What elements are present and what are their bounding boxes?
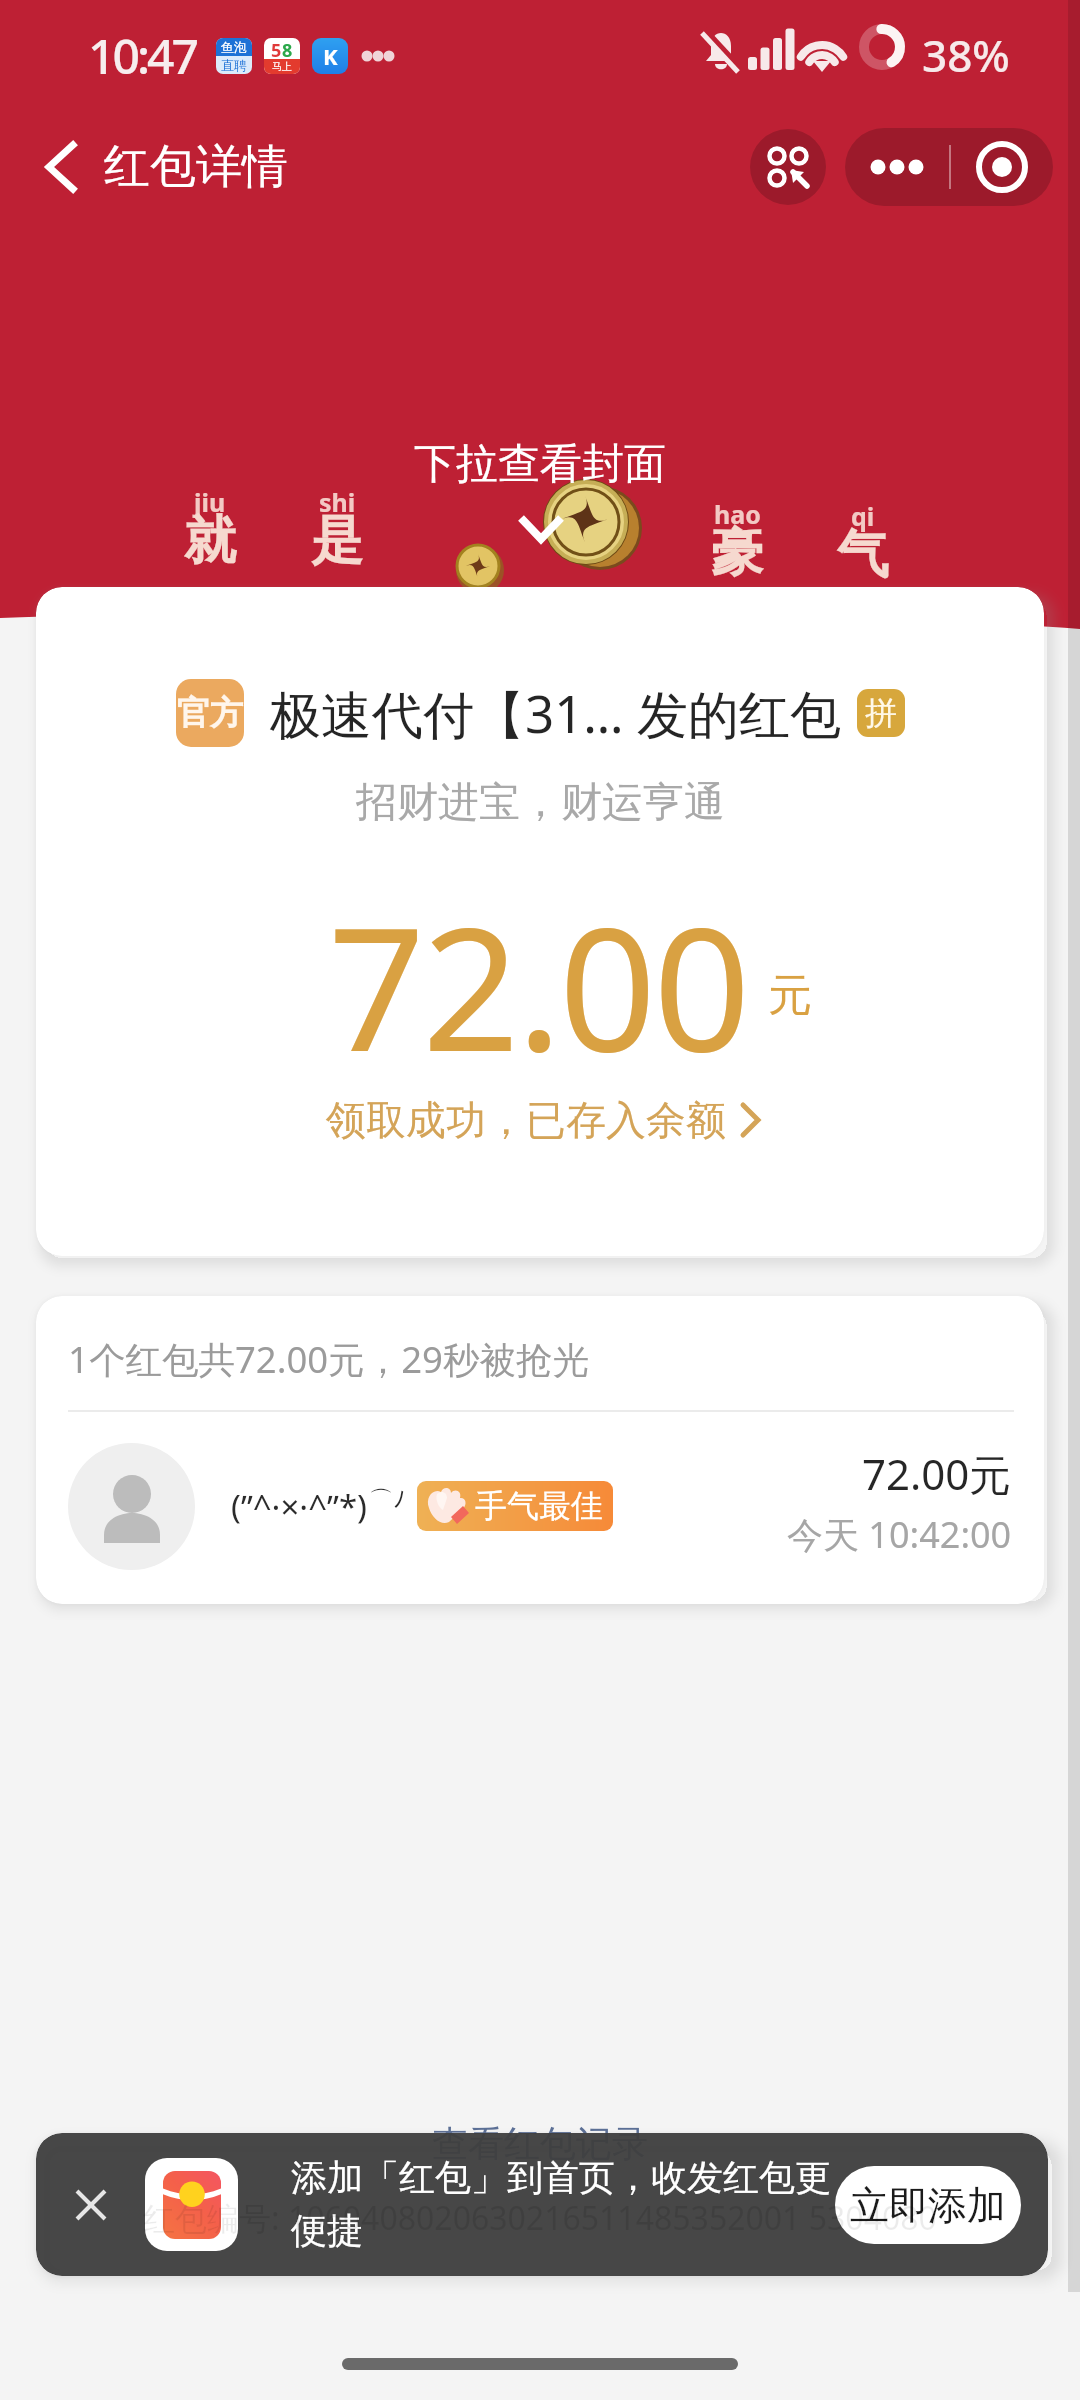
staticText: 72.00元 (862, 1445, 1012, 1502)
button[interactable]: Mini program (750, 129, 826, 205)
staticText: 添加「红包」到首页，收发红包更便捷 (291, 2155, 849, 2254)
staticText: 72.00 (328, 869, 748, 1059)
staticText: 8 (282, 38, 293, 59)
other: Silent (700, 28, 742, 76)
staticText: K (323, 41, 338, 71)
button[interactable]: 查看红包记录 (412, 2117, 668, 2170)
button[interactable]: Back (6, 112, 116, 222)
staticText: 豪 (711, 520, 763, 586)
staticText: 气 (837, 522, 889, 588)
staticText: 元 (768, 968, 812, 1023)
staticText: 红包编号: 1060408020630216511485352001 53040… (143, 2196, 937, 2240)
staticText: 下拉查看封面 (414, 438, 666, 491)
staticText: 鱼泡 (221, 39, 247, 55)
staticText: 直聘 (221, 57, 247, 73)
staticText: 招财进宝，财运亨通 (356, 777, 725, 829)
staticText: 手气最佳 (475, 1486, 603, 1526)
button[interactable]: 立即添加 (835, 2166, 1021, 2244)
button[interactable]: More (845, 128, 949, 206)
staticText: jiu (194, 485, 226, 519)
button[interactable]: Close mini program (951, 128, 1053, 206)
staticText: 官方 (177, 692, 243, 734)
staticText: 领取成功，已存入余额 (326, 1095, 726, 1145)
button[interactable]: Close (36, 2133, 146, 2276)
staticText: qi (851, 499, 875, 533)
staticText: 10:47 (88, 23, 196, 88)
staticText: 红包详情 (104, 138, 288, 196)
staticText: 今天 10:42:00 (787, 1510, 1012, 1559)
staticText: 是 (311, 508, 363, 574)
staticText: ⌒ﾉ (369, 1485, 405, 1515)
staticText: 马上 (272, 60, 292, 73)
staticText: 立即添加 (850, 2181, 1006, 2230)
staticText: (ˮ^·×·^ˮ*) (231, 1484, 367, 1529)
staticText: shi (319, 485, 356, 519)
staticText: 红包编号: 1060408020630216511485352001 53040… (143, 2196, 937, 2240)
staticText: 就 (184, 508, 236, 574)
staticText: 极速代付【31… 发的红包 (270, 678, 841, 748)
staticText: 5 (271, 38, 282, 59)
staticText: hao (714, 497, 761, 531)
button[interactable]: 领取成功，已存入余额 (320, 1087, 768, 1153)
staticText: 拼 (865, 693, 897, 733)
staticText: 38% (922, 25, 1010, 85)
staticText: 1个红包共72.00元，29秒被抢光 (68, 1334, 589, 1384)
button[interactable]: (ˮ^·×·^ˮ*) (36, 1426, 1044, 1586)
